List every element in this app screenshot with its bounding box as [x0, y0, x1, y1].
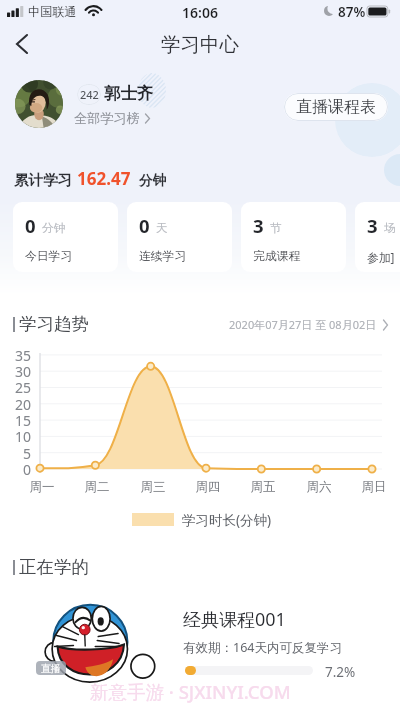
- staticText: 学习中心: [0, 32, 400, 57]
- staticText: 中国联通: [28, 4, 77, 19]
- staticText: 全部学习榜: [74, 110, 140, 127]
- staticText: 周四: [188, 479, 228, 495]
- staticText: 2020年07月27日 至 08月02日: [229, 317, 377, 332]
- button[interactable]: 3: [241, 202, 346, 272]
- staticText: 周三: [133, 479, 173, 495]
- staticText: 参加]: [367, 249, 395, 265]
- staticText: 10: [0, 427, 31, 446]
- button[interactable]: 0: [13, 202, 118, 272]
- staticText: 学习时长(分钟): [182, 511, 272, 529]
- staticText: 今日学习: [25, 249, 73, 264]
- staticText: 5: [0, 444, 31, 463]
- button[interactable]: Back: [0, 22, 44, 66]
- staticText: 连续学习: [139, 249, 187, 264]
- button[interactable]: 3: [355, 202, 400, 272]
- staticText: 新意手游 · SJXINYI.COM: [90, 679, 291, 704]
- staticText: 3: [253, 213, 264, 238]
- staticText: 15: [0, 411, 31, 430]
- staticText: 天: [156, 221, 168, 236]
- staticText: 郭士齐: [104, 83, 154, 104]
- staticText: 周二: [77, 479, 117, 495]
- staticText: 周五: [243, 479, 283, 495]
- staticText: 25: [0, 378, 31, 397]
- staticText: 分钟: [42, 221, 66, 236]
- staticText: 累计学习: [14, 171, 72, 189]
- staticText: 完成课程: [253, 249, 301, 264]
- staticText: 3: [367, 213, 378, 238]
- staticText: 直播: [41, 662, 61, 675]
- staticText: 周日: [354, 479, 394, 495]
- staticText: 16:06: [0, 3, 400, 22]
- staticText: 87%: [338, 3, 366, 21]
- staticText: 0: [0, 460, 31, 479]
- staticText: 经典课程001: [183, 607, 286, 632]
- button[interactable]: 2020年07月27日 至 08月02日: [223, 313, 400, 336]
- staticText: 正在学的: [19, 556, 89, 578]
- staticText: 20: [0, 395, 31, 414]
- staticText: 学习趋势: [19, 313, 89, 335]
- staticText: 162.47: [77, 167, 131, 190]
- staticText: 0: [139, 213, 150, 238]
- staticText: 0: [25, 213, 36, 238]
- staticText: 直播课程表: [296, 97, 376, 117]
- staticText: 节: [270, 221, 282, 236]
- staticText: 周一: [22, 479, 62, 495]
- staticText: 242: [80, 87, 99, 102]
- staticText: 有效期：164天内可反复学习: [183, 639, 342, 656]
- staticText: 35: [0, 346, 31, 365]
- button[interactable]: 全部学习榜: [74, 110, 154, 127]
- staticText: 场: [384, 221, 396, 236]
- button[interactable]: 0: [127, 202, 232, 272]
- button[interactable]: 直播: [10, 586, 390, 700]
- staticText: 30: [0, 362, 31, 381]
- staticText: 7.2%: [325, 663, 356, 681]
- staticText: 周六: [299, 479, 339, 495]
- staticText: 分钟: [139, 172, 166, 189]
- button[interactable]: 直播课程表: [284, 93, 388, 121]
